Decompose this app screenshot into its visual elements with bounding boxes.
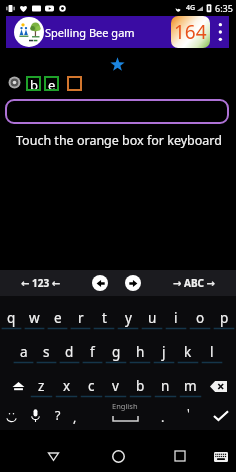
staticText: , bbox=[73, 409, 77, 426]
staticText: n bbox=[161, 377, 170, 395]
button[interactable]: Voice input bbox=[24, 404, 46, 426]
button[interactable]: a bbox=[12, 330, 35, 364]
button[interactable]: z bbox=[29, 364, 54, 398]
button[interactable]: Next bbox=[125, 270, 141, 296]
button[interactable]: n bbox=[153, 364, 178, 398]
staticText: b bbox=[136, 377, 145, 395]
button[interactable]: Recents bbox=[172, 448, 188, 464]
staticText: Spelling Bee gam bbox=[45, 25, 135, 40]
staticText: v bbox=[112, 377, 119, 395]
staticText: → ABC → bbox=[173, 276, 215, 290]
staticText: x bbox=[63, 377, 71, 395]
button[interactable]: o bbox=[188, 296, 212, 330]
button[interactable]: w bbox=[23, 296, 46, 330]
button[interactable]: Backspace bbox=[204, 364, 232, 398]
button[interactable]: s bbox=[35, 330, 58, 364]
button[interactable]: e bbox=[46, 296, 69, 330]
button[interactable]: Emoji bbox=[0, 405, 22, 427]
button[interactable]: , bbox=[65, 406, 85, 428]
staticText: q bbox=[7, 309, 16, 327]
staticText: 6:35 bbox=[215, 2, 233, 14]
button[interactable]: ← 123 ← bbox=[5, 270, 77, 296]
staticText: w bbox=[29, 309, 40, 327]
button[interactable]: d bbox=[58, 330, 81, 364]
button[interactable]: h bbox=[128, 330, 152, 364]
button[interactable]: Enter bbox=[208, 404, 234, 428]
button[interactable]: ? bbox=[48, 404, 68, 426]
staticText: English bbox=[112, 401, 138, 411]
staticText: Touch the orange box for keyboard bbox=[1, 132, 236, 149]
button[interactable]: e bbox=[44, 76, 59, 91]
staticText: c bbox=[88, 377, 95, 395]
staticText: m bbox=[184, 377, 197, 395]
button[interactable]: Space bbox=[90, 401, 160, 429]
button[interactable]: m bbox=[178, 364, 203, 398]
button[interactable]: y bbox=[116, 296, 140, 330]
button[interactable]: l bbox=[200, 330, 224, 364]
button[interactable]: f bbox=[81, 330, 104, 364]
staticText: k bbox=[184, 343, 192, 361]
button[interactable]: 164 bbox=[171, 16, 210, 48]
staticText: b bbox=[30, 76, 38, 91]
button[interactable]: u bbox=[140, 296, 164, 330]
staticText: t bbox=[102, 309, 107, 327]
button[interactable]: c bbox=[79, 364, 104, 398]
staticText: p bbox=[220, 309, 229, 327]
staticText: ← 123 ← bbox=[21, 276, 61, 290]
staticText: e bbox=[54, 309, 62, 327]
button[interactable]: Shift bbox=[6, 364, 30, 398]
staticText: r bbox=[78, 309, 84, 327]
button[interactable]: . bbox=[153, 406, 173, 428]
staticText: z bbox=[38, 377, 45, 395]
button[interactable]: g bbox=[104, 330, 128, 364]
button[interactable]: b bbox=[26, 76, 41, 91]
staticText: h bbox=[136, 343, 145, 361]
staticText: ' bbox=[187, 405, 190, 422]
button[interactable]: x bbox=[54, 364, 79, 398]
staticText: ? bbox=[55, 407, 61, 424]
staticText: . bbox=[161, 409, 165, 426]
button[interactable]: k bbox=[176, 330, 200, 364]
button[interactable]: r bbox=[69, 296, 92, 330]
staticText: 164 bbox=[174, 19, 207, 45]
staticText: s bbox=[43, 343, 50, 361]
button[interactable]: Speak word bbox=[8, 76, 21, 89]
staticText: i bbox=[174, 309, 178, 327]
button[interactable]: i bbox=[164, 296, 188, 330]
button[interactable] bbox=[5, 99, 229, 124]
button[interactable]: t bbox=[92, 296, 116, 330]
staticText: e bbox=[48, 76, 56, 91]
button[interactable]: j bbox=[152, 330, 176, 364]
staticText: o bbox=[196, 309, 205, 327]
staticText: 4G bbox=[186, 3, 196, 13]
button[interactable]: → ABC → bbox=[158, 270, 230, 296]
button[interactable]: v bbox=[103, 364, 128, 398]
button[interactable]: Switch keyboard bbox=[213, 449, 229, 465]
button[interactable]: b bbox=[128, 364, 153, 398]
button[interactable]: ' bbox=[178, 402, 198, 424]
button[interactable]: Home bbox=[110, 448, 126, 464]
button[interactable] bbox=[67, 76, 82, 91]
button[interactable]: p bbox=[212, 296, 236, 330]
button[interactable]: Previous bbox=[92, 270, 108, 296]
button[interactable]: More options bbox=[211, 16, 229, 48]
staticText: l bbox=[210, 343, 214, 361]
staticText: a bbox=[20, 343, 28, 361]
staticText: d bbox=[65, 343, 74, 361]
staticText: f bbox=[90, 343, 95, 361]
staticText: j bbox=[162, 343, 166, 361]
staticText: u bbox=[148, 309, 157, 327]
staticText: y bbox=[125, 309, 132, 327]
staticText: g bbox=[112, 343, 121, 361]
button[interactable]: Back bbox=[45, 448, 61, 464]
button[interactable]: q bbox=[0, 296, 23, 330]
